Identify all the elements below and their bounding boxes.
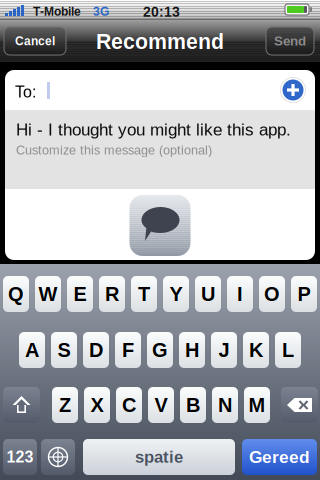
button[interactable]: U: [195, 276, 221, 312]
button[interactable]: A: [19, 332, 45, 368]
button[interactable]: Next keyboard: [41, 439, 75, 475]
staticText: Cancel: [15, 34, 55, 48]
staticText: T: [138, 283, 150, 305]
staticText: D: [89, 339, 103, 361]
staticText: Gereed: [249, 447, 310, 467]
button[interactable]: Send: [266, 27, 314, 55]
staticText: P: [297, 283, 310, 305]
staticText: Customize this message (optional): [16, 143, 212, 157]
staticText: R: [105, 283, 119, 305]
staticText: Y: [169, 283, 182, 305]
button[interactable]: Cancel: [4, 27, 66, 55]
staticText: M: [248, 394, 265, 416]
staticText: Recommend: [96, 30, 224, 53]
button[interactable]: V: [148, 387, 174, 423]
button[interactable]: Add recipient: [280, 77, 306, 103]
button[interactable]: Shift: [3, 387, 40, 423]
staticText: N: [218, 394, 232, 416]
staticText: 20:13: [143, 4, 180, 20]
button[interactable]: S: [51, 332, 77, 368]
button[interactable]: H: [179, 332, 205, 368]
staticText: Q: [8, 283, 24, 305]
staticText: T-Mobile: [33, 5, 81, 18]
button[interactable]: W: [35, 276, 61, 312]
button[interactable]: Z: [52, 387, 78, 423]
staticText: Send: [274, 34, 306, 48]
staticText: L: [282, 339, 294, 361]
button[interactable]: O: [259, 276, 285, 312]
button[interactable]: T: [131, 276, 157, 312]
button[interactable]: B: [180, 387, 206, 423]
staticText: W: [38, 283, 57, 305]
button[interactable]: X: [84, 387, 110, 423]
button[interactable]: C: [116, 387, 142, 423]
staticText: B: [186, 394, 200, 416]
button[interactable]: D: [83, 332, 109, 368]
staticText: Hi - I thought you might like this app.: [16, 120, 291, 139]
staticText: Z: [59, 394, 71, 416]
staticText: U: [201, 283, 215, 305]
staticText: J: [218, 339, 229, 361]
staticText: K: [249, 339, 263, 361]
staticText: 123: [6, 448, 33, 466]
button[interactable]: J: [211, 332, 237, 368]
button[interactable]: K: [243, 332, 269, 368]
staticText: 3G: [93, 5, 109, 18]
staticText: spatie: [135, 448, 183, 466]
staticText: E: [73, 283, 86, 305]
staticText: C: [122, 394, 136, 416]
button[interactable]: E: [67, 276, 93, 312]
staticText: To:: [15, 83, 36, 101]
button[interactable]: 123: [3, 439, 37, 475]
staticText: V: [154, 394, 167, 416]
button[interactable]: M: [244, 387, 270, 423]
staticText: A: [25, 339, 39, 361]
button[interactable]: R: [99, 276, 125, 312]
button[interactable]: I: [227, 276, 253, 312]
button[interactable]: Delete: [281, 387, 318, 423]
button[interactable]: spatie: [83, 439, 235, 475]
staticText: G: [152, 339, 168, 361]
button[interactable]: P: [291, 276, 317, 312]
button[interactable]: Gereed: [242, 439, 317, 475]
button[interactable]: Q: [3, 276, 29, 312]
staticText: H: [185, 339, 199, 361]
button[interactable]: L: [275, 332, 301, 368]
button[interactable]: G: [147, 332, 173, 368]
staticText: O: [264, 283, 280, 305]
staticText: S: [57, 339, 70, 361]
staticText: I: [237, 283, 243, 305]
staticText: F: [122, 339, 134, 361]
button[interactable]: Y: [163, 276, 189, 312]
staticText: X: [90, 394, 103, 416]
button[interactable]: F: [115, 332, 141, 368]
button[interactable]: N: [212, 387, 238, 423]
